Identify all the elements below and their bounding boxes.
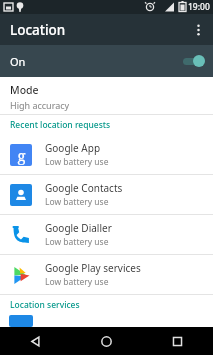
staticText: Google App [45,141,101,155]
button[interactable]: Recents [142,327,213,355]
staticText: 19:00 [188,1,210,13]
staticText: Mode [10,83,39,97]
button[interactable]: Google Play services [0,255,213,294]
staticText: g [17,145,26,165]
staticText: Google Dialler [45,221,112,235]
staticText: Location [10,21,66,39]
staticText: Google Contacts [45,181,123,195]
button[interactable]: On [0,45,213,77]
button[interactable] [0,315,213,327]
staticText: Low battery use [45,276,109,288]
staticText: On [10,54,26,69]
staticText: Google Play services [45,261,141,275]
staticText: Recent location requests [10,119,111,131]
staticText: Low battery use [45,156,109,168]
button[interactable]: Google Contacts [0,175,213,214]
button[interactable]: g [0,135,213,174]
staticText: Low battery use [45,196,109,208]
staticText: High accuracy [10,99,70,111]
button[interactable]: Back [0,327,71,355]
button[interactable]: More options [187,17,213,43]
staticText: Low battery use [45,236,109,248]
button[interactable]: Mode [0,77,213,114]
button[interactable]: Google Dialler [0,215,213,254]
button[interactable]: Home [71,327,142,355]
staticText: Location services [10,299,80,311]
